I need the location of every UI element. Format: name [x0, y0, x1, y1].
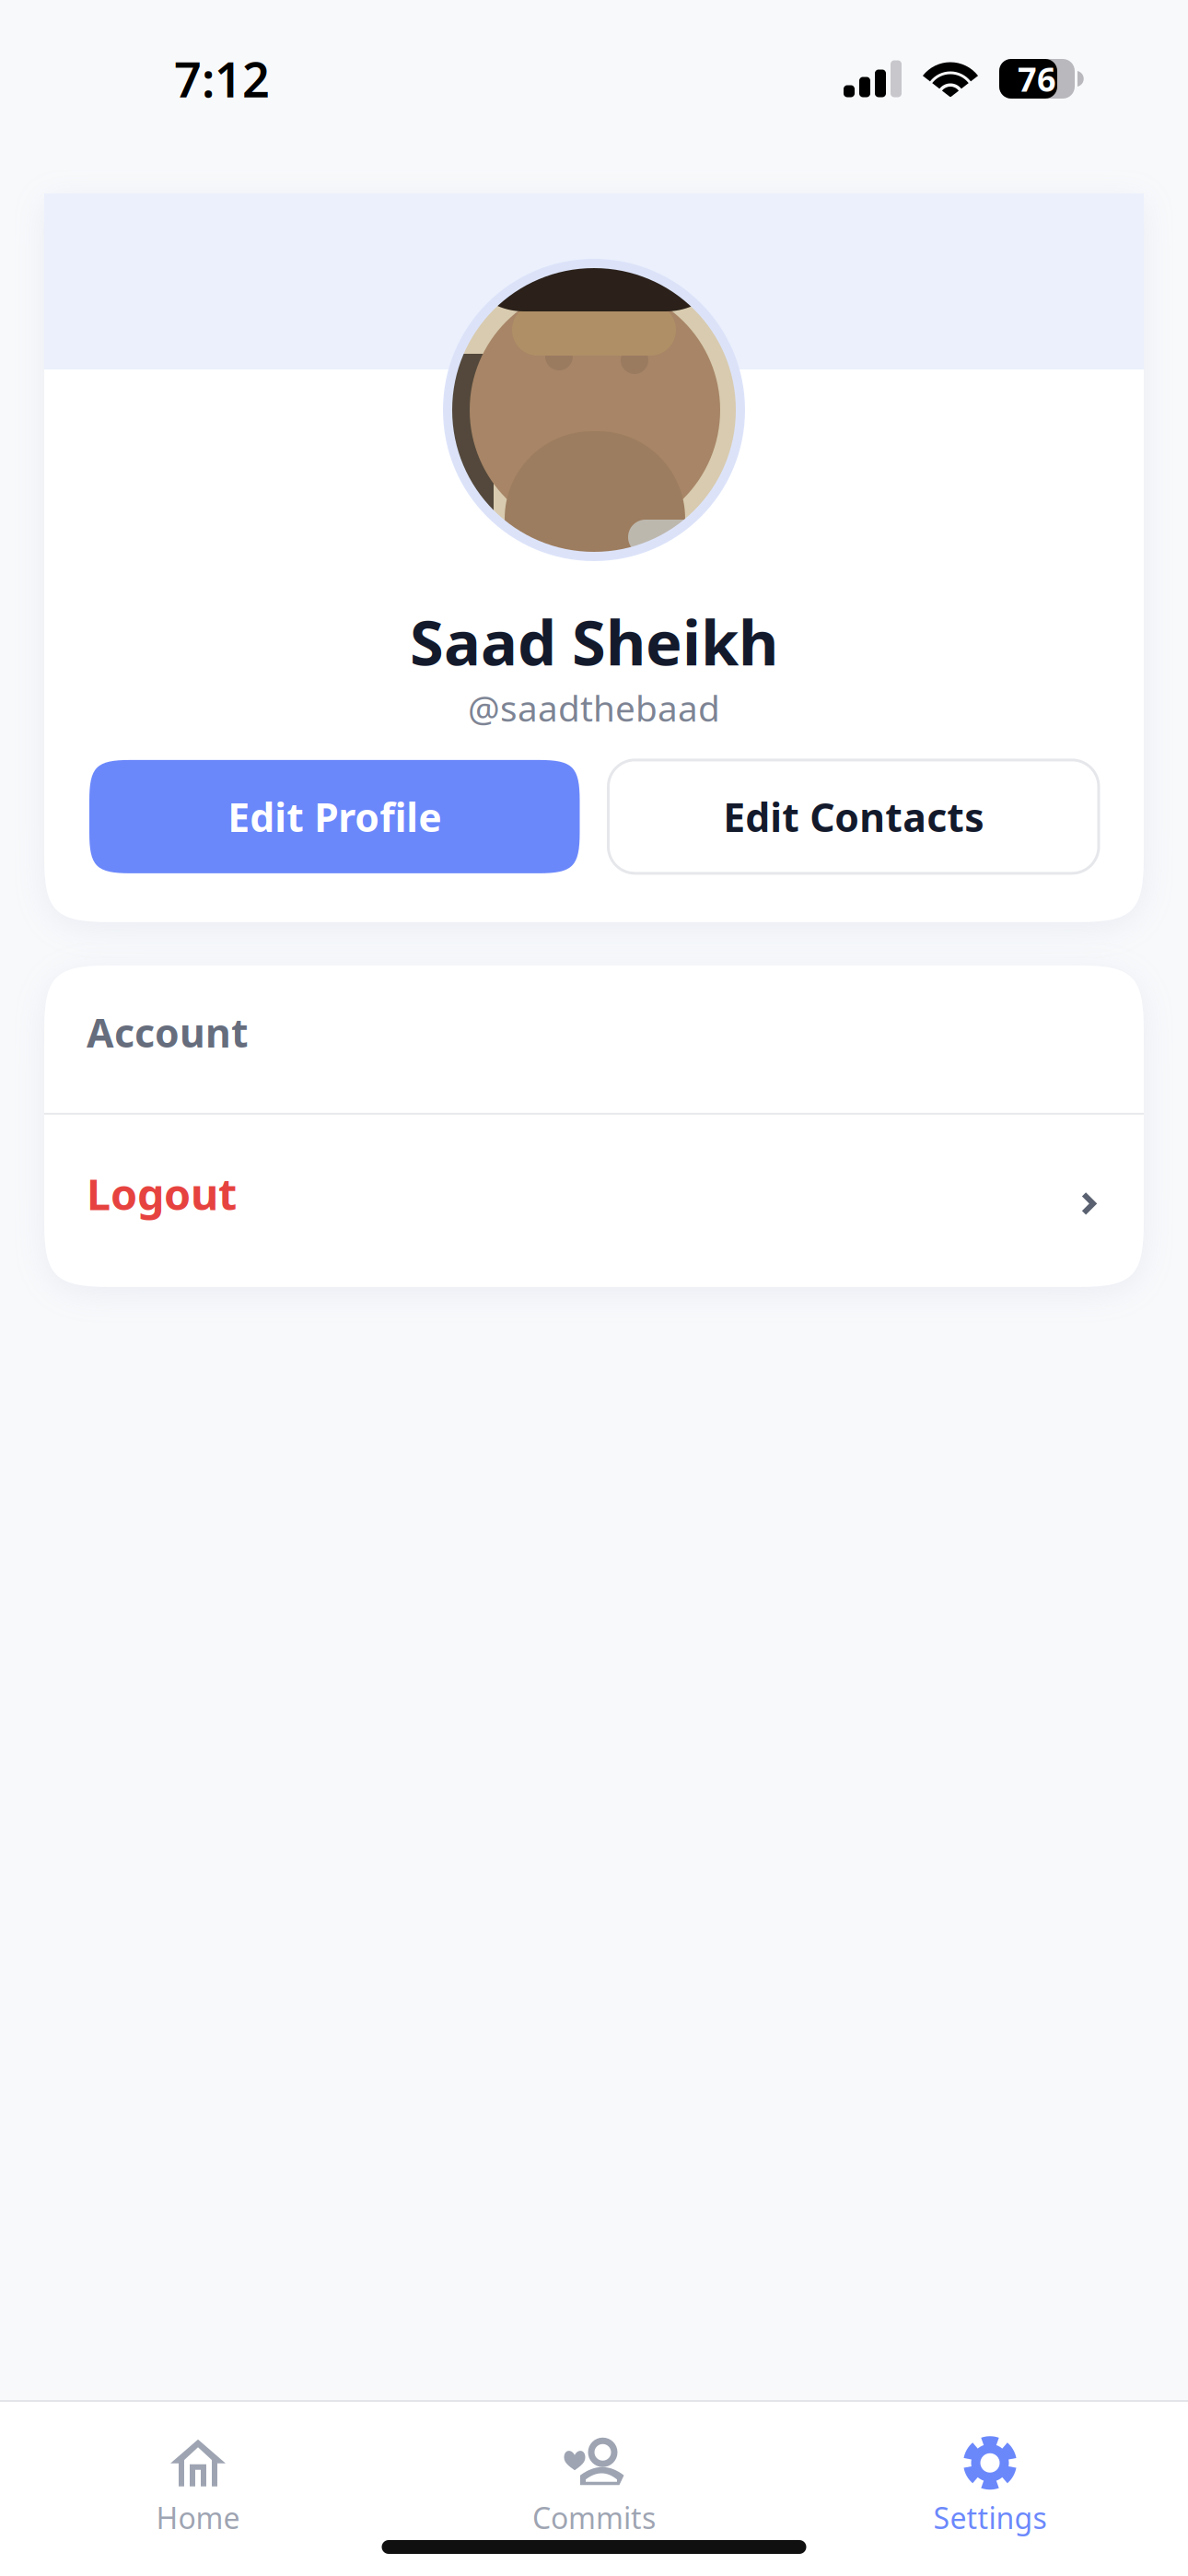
button[interactable]: Settings — [792, 2443, 1188, 2532]
staticText: 7:12 — [174, 47, 270, 111]
staticText: 76 — [1018, 57, 1056, 101]
staticText: Settings — [933, 2498, 1047, 2537]
button[interactable]: Home — [0, 2443, 396, 2532]
button[interactable]: Logout — [44, 1115, 1144, 1287]
staticText: Saad Sheikh — [410, 601, 778, 682]
staticText: @saadthebaad — [468, 684, 720, 731]
staticText: Home — [156, 2498, 240, 2537]
button[interactable]: Commits — [396, 2443, 792, 2532]
staticText: Logout — [87, 1165, 237, 1222]
staticText: Account — [87, 1006, 249, 1058]
button[interactable]: Edit Profile — [89, 760, 580, 873]
staticText: Edit Contacts — [723, 790, 984, 843]
staticText: Edit Profile — [228, 790, 441, 843]
button[interactable]: Edit Contacts — [608, 760, 1099, 873]
staticText: Commits — [532, 2498, 656, 2537]
